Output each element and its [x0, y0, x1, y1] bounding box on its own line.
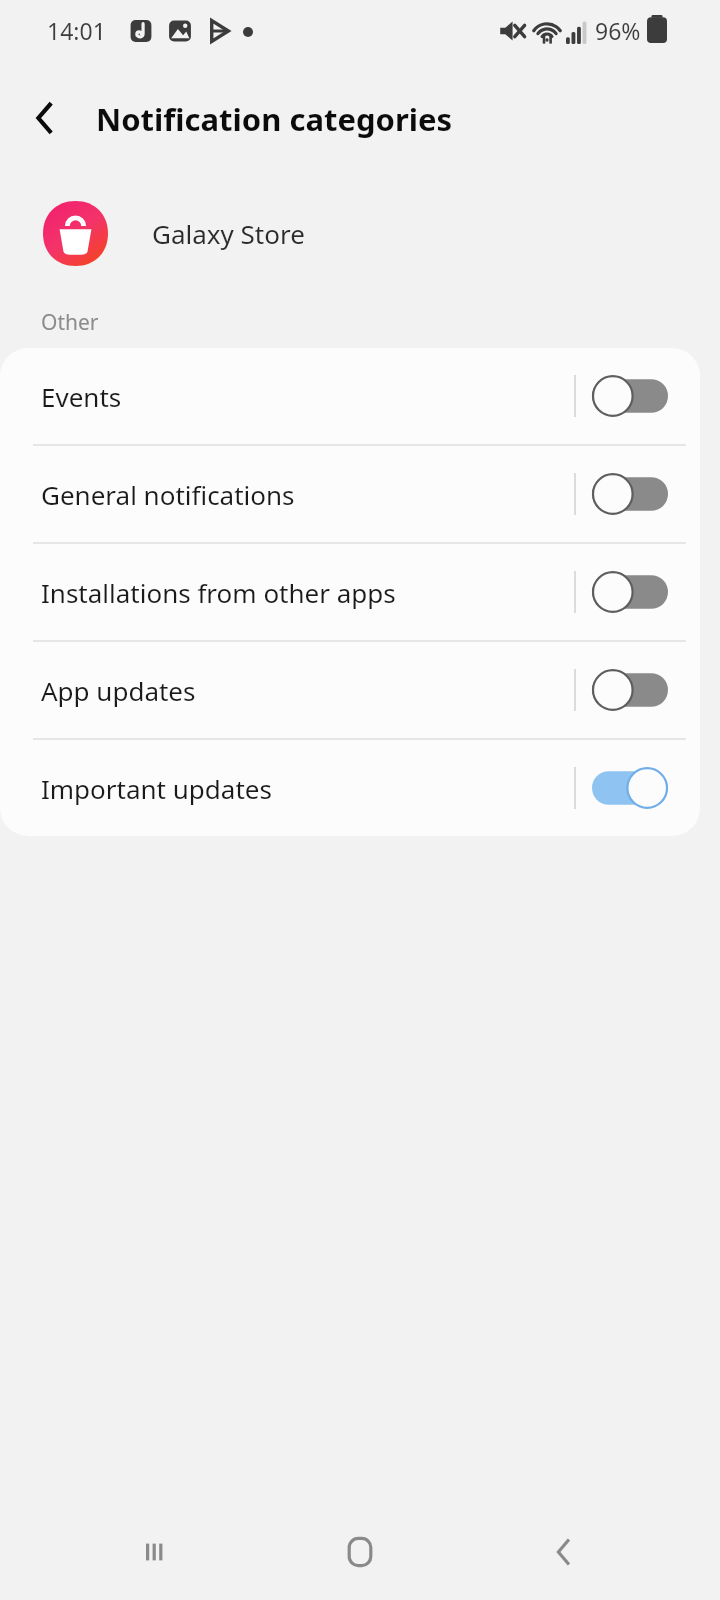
button[interactable]: Galaxy Store	[0, 178, 720, 288]
button[interactable]: Off	[592, 669, 668, 711]
button[interactable]: Back	[12, 85, 78, 151]
staticText: Other	[41, 308, 99, 337]
button[interactable]: On	[592, 767, 668, 809]
button[interactable]: Off	[592, 571, 668, 613]
staticText: 14:01	[47, 15, 106, 46]
button[interactable]: Home	[324, 1516, 396, 1588]
staticText: Events	[41, 379, 122, 414]
staticText: Installations from other apps	[41, 575, 396, 610]
staticText: Notification categories	[96, 98, 453, 140]
button[interactable]: Off	[592, 375, 668, 417]
staticText: Important updates	[41, 771, 272, 806]
staticText: App updates	[41, 673, 196, 708]
button[interactable]: Back	[528, 1516, 600, 1588]
button[interactable]: Important updates	[0, 740, 700, 836]
button[interactable]: Off	[592, 473, 668, 515]
staticText: 96%	[595, 15, 641, 46]
staticText: General notifications	[41, 477, 295, 512]
button[interactable]: App updates	[0, 642, 700, 738]
staticText: Galaxy Store	[152, 216, 305, 251]
button[interactable]: Recent apps	[120, 1516, 192, 1588]
button[interactable]: Events	[0, 348, 700, 444]
button[interactable]: General notifications	[0, 446, 700, 542]
button[interactable]: Installations from other apps	[0, 544, 700, 640]
